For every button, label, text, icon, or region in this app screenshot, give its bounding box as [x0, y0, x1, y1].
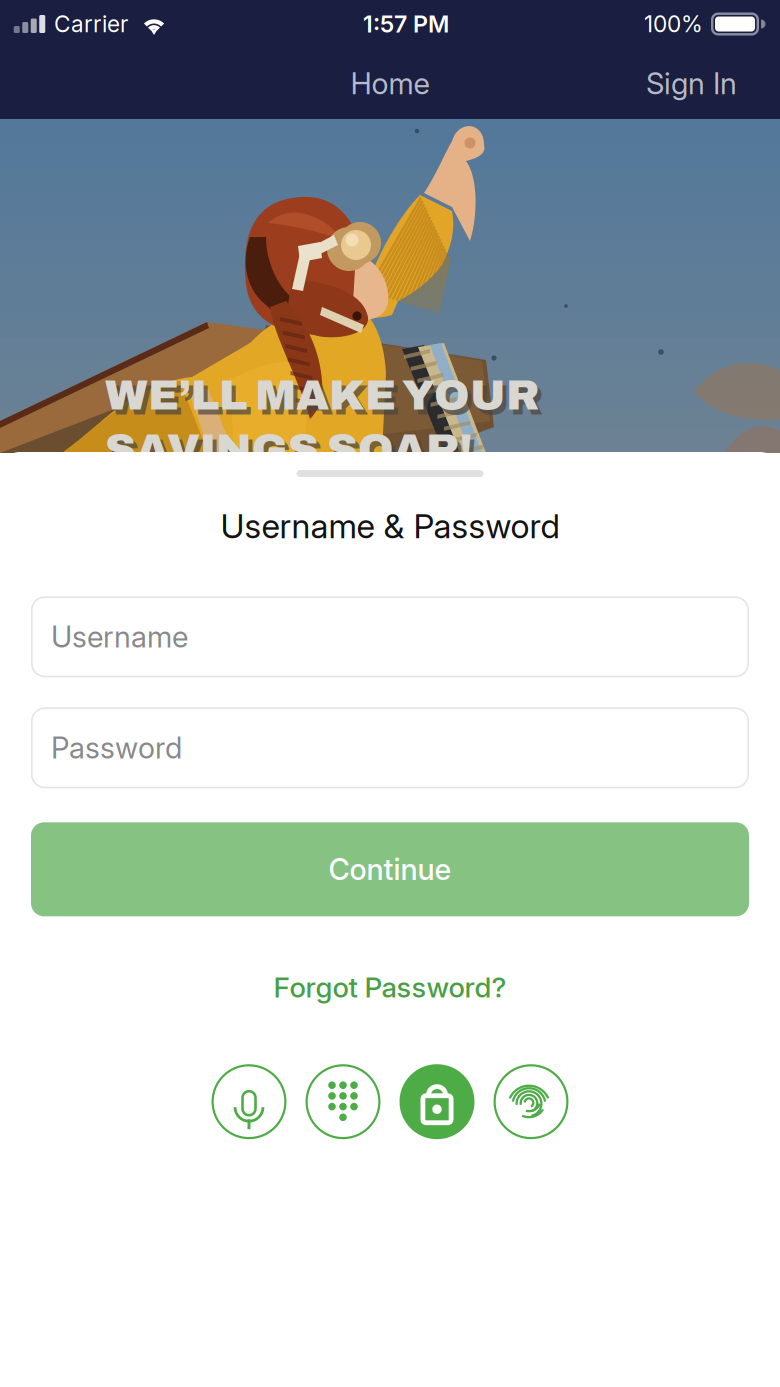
staticText: SAVINGS SOAR! — [105, 426, 473, 472]
staticText: 100% — [644, 10, 703, 38]
button[interactable]: Username — [31, 596, 749, 677]
staticText: SAVINGS SOAR! — [109, 431, 477, 477]
staticText: Sign In — [646, 66, 737, 101]
staticText: Password — [51, 730, 182, 766]
staticText: Username & Password — [220, 506, 559, 546]
staticText: Carrier — [54, 10, 128, 38]
button[interactable]: Password — [31, 707, 749, 788]
button[interactable]: Touch ID sign in — [493, 1064, 568, 1139]
button[interactable]: Voice sign in — [211, 1064, 286, 1139]
button[interactable]: Passcode sign in — [305, 1064, 380, 1139]
staticText: 1:57 PM — [363, 10, 449, 38]
staticText: WE’LL MAKE YOUR — [109, 377, 543, 423]
button[interactable]: Sign In — [634, 56, 749, 111]
button[interactable]: Password sign in — [399, 1064, 474, 1139]
staticText: Continue — [328, 852, 451, 887]
button[interactable]: Continue — [31, 822, 749, 916]
staticText: Username — [51, 619, 188, 655]
staticText: Home — [350, 66, 429, 101]
staticText: WE’LL MAKE YOUR — [105, 372, 539, 418]
button[interactable]: Forgot Password? — [253, 958, 526, 1016]
staticText: Forgot Password? — [273, 970, 506, 1004]
